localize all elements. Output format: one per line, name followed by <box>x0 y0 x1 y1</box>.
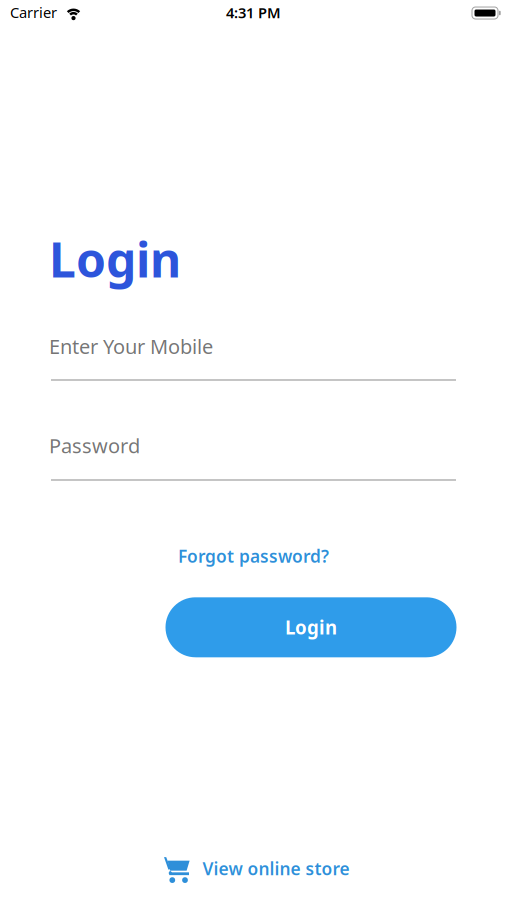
button[interactable]: Enter Your Mobile <box>51 295 456 385</box>
staticText: Login <box>49 227 181 291</box>
staticText: Enter Your Mobile <box>49 333 213 360</box>
button[interactable]: Password <box>51 395 456 485</box>
staticText: Forgot password? <box>178 544 329 567</box>
staticText: 4:31 PM <box>226 3 281 22</box>
staticText: View online store <box>203 857 350 880</box>
button[interactable]: Login <box>165 597 456 657</box>
staticText: Login <box>285 615 337 640</box>
staticText: Password <box>49 432 140 459</box>
button[interactable]: Forgot password? <box>178 544 329 567</box>
button[interactable]: View online store <box>163 854 353 888</box>
staticText: Carrier <box>10 3 57 22</box>
